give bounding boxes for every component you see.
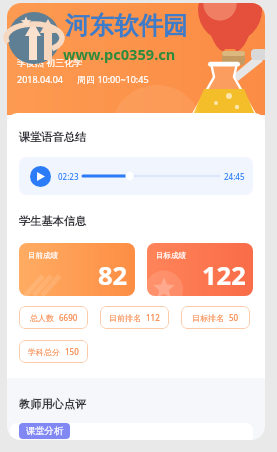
button[interactable]: Play: [19, 157, 253, 195]
staticText: 82: [98, 258, 128, 293]
staticText: 150: [65, 346, 79, 357]
staticText: 50: [229, 312, 239, 323]
staticText: 总人数: [30, 313, 54, 323]
button[interactable]: 学科总分: [19, 340, 88, 363]
staticText: 6690: [59, 312, 78, 323]
staticText: 目标成绩: [156, 251, 186, 260]
staticText: www.pc0359.cn: [63, 44, 176, 64]
staticText: 目前排名: [109, 313, 141, 323]
staticText: 目标排名: [192, 313, 224, 323]
staticText: 目前成绩: [28, 251, 58, 260]
staticText: 112: [146, 312, 160, 323]
staticText: 课堂分析: [26, 425, 64, 437]
staticText: 课堂语音总结: [19, 130, 87, 144]
staticText: 学科总分: [28, 347, 60, 357]
staticText: 河东软件园: [65, 10, 188, 41]
button[interactable]: 目前成绩: [19, 243, 135, 296]
staticText: 教师用心点评: [19, 397, 87, 411]
button[interactable]: 目标成绩: [147, 243, 253, 296]
button[interactable]: 目前排名: [100, 306, 169, 329]
staticText: 24:45: [224, 171, 245, 182]
staticText: 02:23: [58, 171, 79, 182]
button[interactable]: 课堂分析: [19, 423, 70, 439]
staticText: 学生基本信息: [19, 214, 87, 228]
staticText: 李俊杰 初三化学: [17, 56, 83, 68]
button[interactable]: 总人数: [19, 306, 88, 329]
button[interactable]: 目标排名: [181, 306, 250, 329]
other: Play: [30, 166, 51, 187]
staticText: 122: [202, 258, 246, 293]
staticText: 2018.04.04 周四 10:00~10:45: [17, 73, 149, 85]
